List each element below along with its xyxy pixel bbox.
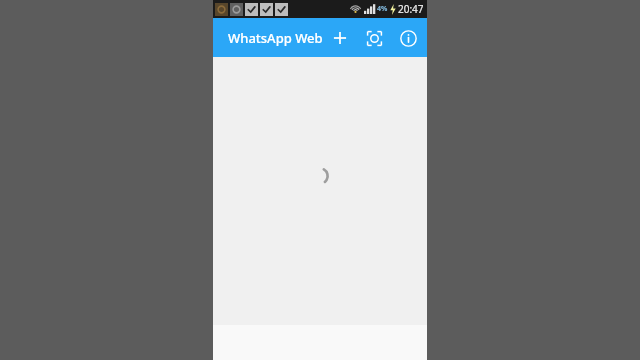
button[interactable]: Scan QR code [357,21,391,55]
staticText: 4% [377,4,388,14]
button[interactable]: Info [391,21,425,55]
button[interactable]: Add [323,21,357,55]
staticText: WhatsApp Web [228,29,323,47]
staticText: 20:47 [398,2,424,16]
